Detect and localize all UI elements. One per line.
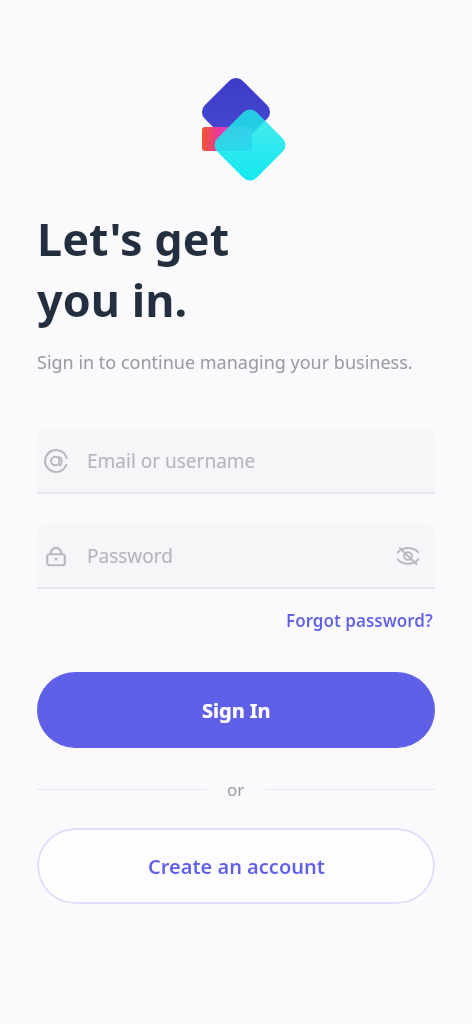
button[interactable]: Show password bbox=[391, 539, 425, 573]
staticText: Email or username bbox=[87, 448, 425, 474]
staticText: Forgot password? bbox=[286, 609, 433, 632]
staticText: Password bbox=[87, 543, 391, 569]
button[interactable]: Password bbox=[37, 524, 435, 589]
staticText: Sign in to continue managing your busine… bbox=[37, 350, 413, 375]
button[interactable]: Forgot password? bbox=[284, 605, 435, 636]
staticText: Create an account bbox=[148, 853, 325, 880]
button[interactable]: Sign In bbox=[37, 672, 435, 748]
staticText: Sign In bbox=[202, 697, 271, 724]
staticText: Let's get bbox=[37, 208, 230, 269]
staticText: or bbox=[227, 778, 245, 801]
button[interactable]: Email or username bbox=[37, 429, 435, 494]
staticText: you in. bbox=[37, 269, 188, 330]
button[interactable]: Create an account bbox=[37, 828, 435, 904]
